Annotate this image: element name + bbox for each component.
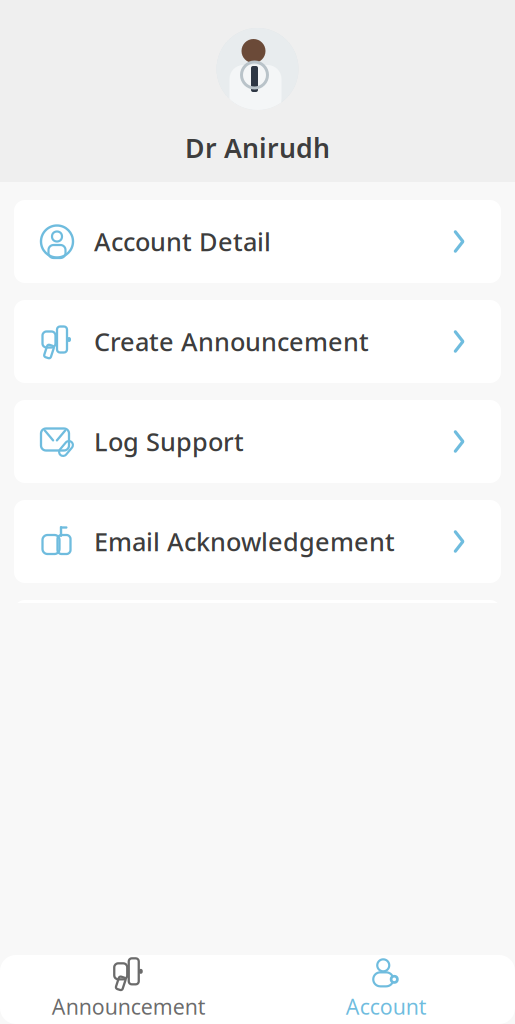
staticText: Account: [346, 992, 427, 1021]
staticText: Log Support: [94, 425, 244, 458]
button[interactable]: Email Acknowledgement: [14, 500, 501, 583]
button[interactable]: Support & Legal: [14, 900, 501, 983]
staticText: Dr Anirudh: [185, 130, 330, 165]
staticText: Account Detail: [94, 225, 271, 258]
button[interactable]: Account: [257, 956, 515, 1022]
staticText: Create Announcement: [94, 325, 369, 358]
button[interactable]: Account Detail: [14, 200, 501, 283]
button[interactable]: Log Support: [14, 400, 501, 483]
button[interactable]: Create Announcement: [14, 300, 501, 383]
staticText: Email Acknowledgement: [94, 525, 395, 558]
button[interactable]: Announcement: [0, 956, 257, 1022]
staticText: Support & Legal: [94, 925, 291, 958]
staticText: Announcement: [52, 992, 206, 1021]
